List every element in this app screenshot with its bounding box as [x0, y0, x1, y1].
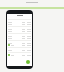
- button[interactable]: Add: [26, 60, 30, 64]
- button[interactable]: [8, 30, 31, 32]
- button[interactable]: [8, 54, 31, 56]
- button[interactable]: [8, 37, 31, 39]
- button[interactable]: [8, 23, 31, 25]
- button[interactable]: [8, 42, 31, 44]
- button[interactable]: [8, 35, 31, 37]
- button[interactable]: [8, 28, 31, 30]
- button[interactable]: [8, 44, 31, 46]
- button[interactable]: [8, 21, 31, 23]
- button[interactable]: [8, 49, 31, 51]
